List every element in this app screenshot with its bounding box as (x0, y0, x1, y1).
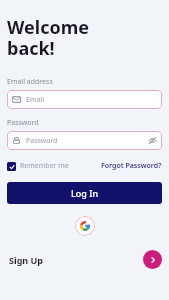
staticText: Log In (71, 187, 99, 199)
staticText: Email address (7, 77, 53, 87)
button[interactable]: Log In (7, 182, 162, 204)
staticText: Email (26, 95, 44, 105)
button[interactable]: Forgot Password? (101, 159, 162, 173)
other: Show password (148, 136, 157, 145)
button[interactable]: Next (143, 250, 162, 269)
button[interactable]: Sign Up (7, 252, 46, 268)
staticText: Password (7, 118, 39, 128)
staticText: Welcome back! (7, 15, 89, 61)
staticText: Password (26, 136, 58, 146)
button[interactable]: Remember me (7, 159, 69, 173)
staticText: Forgot Password? (101, 161, 162, 171)
button[interactable]: Email (7, 90, 162, 109)
staticText: Remember me (20, 161, 69, 171)
staticText: Sign Up (9, 254, 44, 266)
button[interactable]: Password (7, 131, 162, 150)
button[interactable]: Sign in with Google (75, 216, 95, 236)
